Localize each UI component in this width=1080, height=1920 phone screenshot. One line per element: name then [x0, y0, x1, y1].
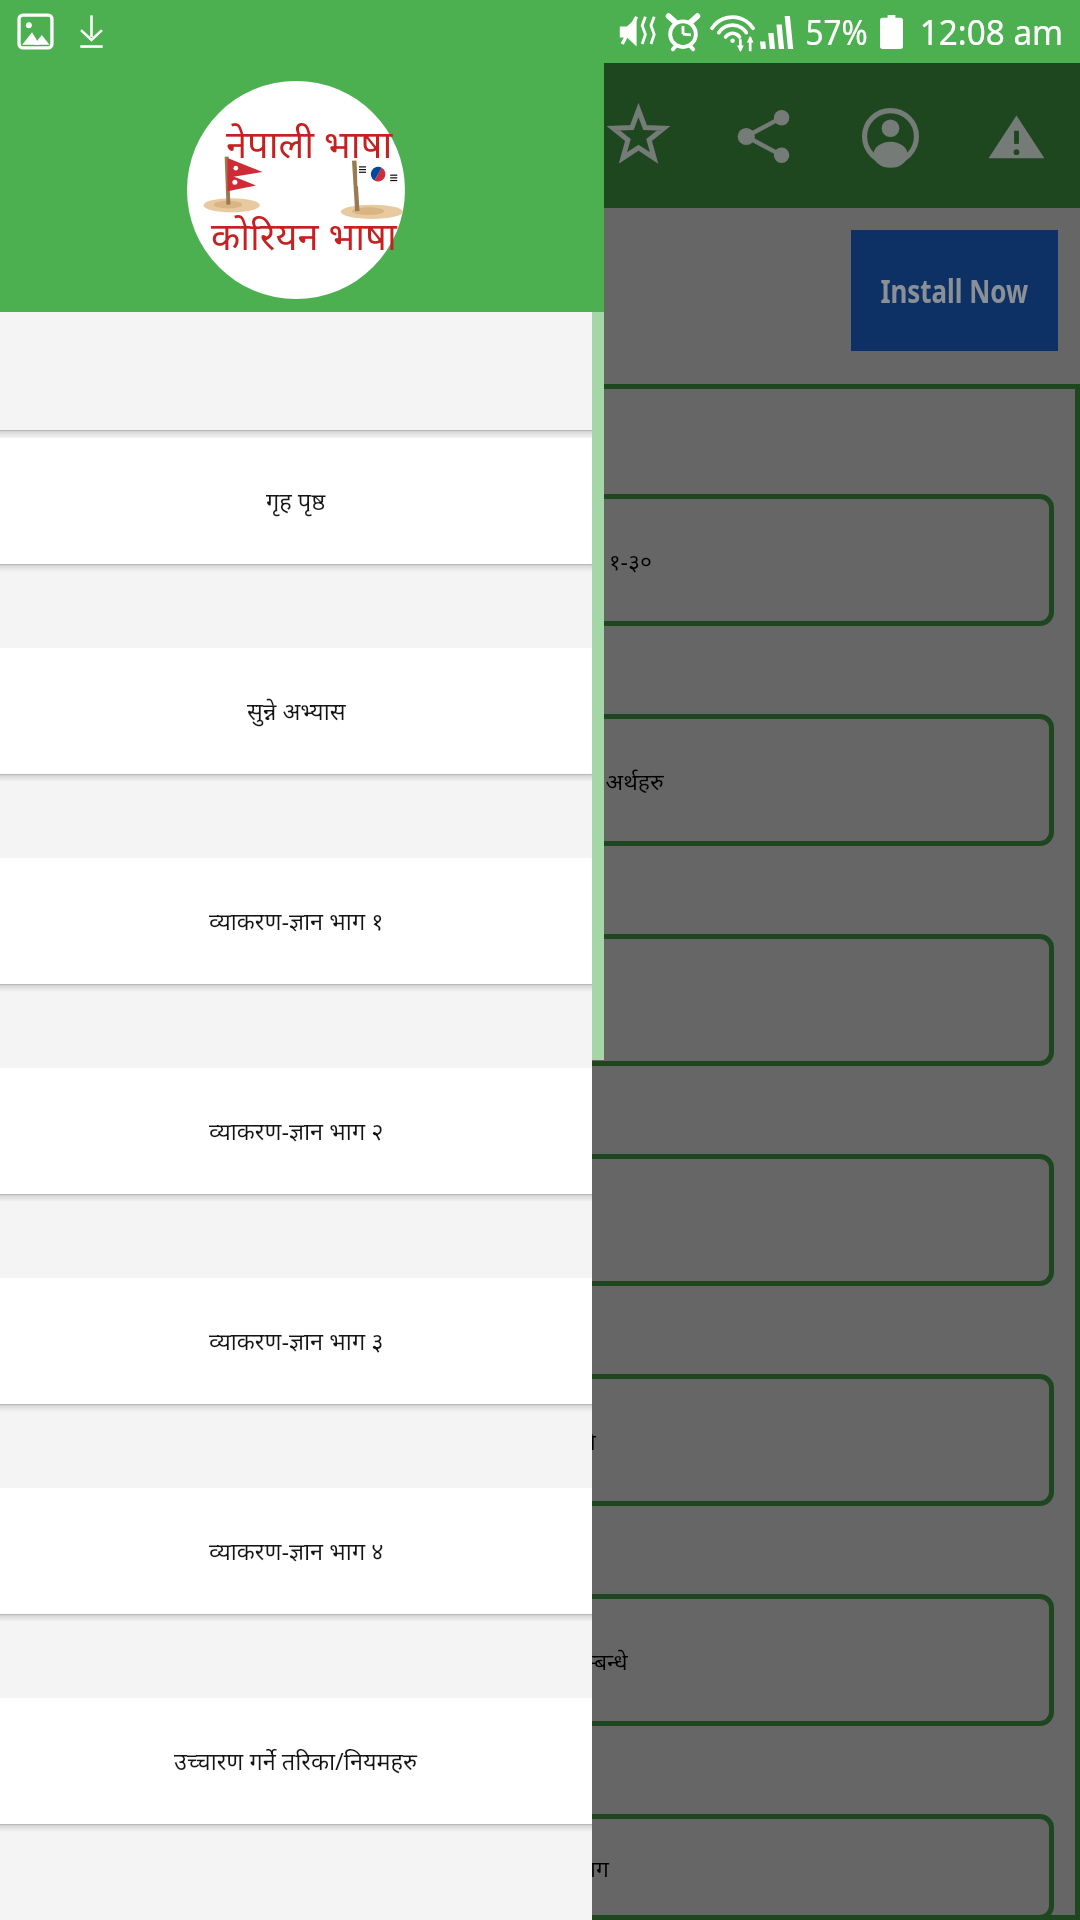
button[interactable]: कोरिया बारेमा सम्बन्धे	[26, 1594, 1054, 1726]
button[interactable]: गृह पृष्ठ	[0, 438, 592, 564]
button[interactable]: Share	[701, 73, 827, 199]
staticText: व्याकरण-ज्ञान भाग ४	[209, 1535, 384, 1567]
button[interactable]: व्याकरण-ज्ञान भाग १	[0, 858, 592, 984]
button[interactable]: व्याकरण-ज्ञान भाग ४	[0, 1488, 592, 1614]
staticText: कोरियन भाषा	[211, 209, 397, 261]
staticText: व्याकरण-ज्ञान भाग २	[209, 1115, 384, 1147]
staticText: कोरियन शब्द र तिनका अर्थहरु	[416, 765, 664, 796]
button[interactable]: Install Now	[851, 230, 1058, 351]
staticText: सुन्ने अभ्यास भाग	[471, 1852, 609, 1883]
button[interactable]: सुन्ने अभ्यास	[0, 648, 592, 774]
staticText: व्याकरण-ज्ञान भाग ३	[209, 1325, 384, 1357]
staticText: व्याकरण-ज्ञान भाग १	[209, 905, 384, 937]
button[interactable]: शब्द ज्ञान	[26, 1154, 1054, 1286]
button[interactable]: Account	[827, 73, 953, 199]
button[interactable]: Report	[953, 73, 1079, 199]
button[interactable]: Favourite	[575, 73, 701, 199]
button[interactable]: Screenshot	[18, 14, 53, 49]
staticText: 12:08 am	[920, 8, 1063, 56]
staticText: 57%	[805, 8, 868, 56]
staticText: कोरियन शब्दहरु भाग १-३०	[429, 545, 652, 576]
button[interactable]: व्याकरण-ज्ञान भाग ३	[0, 1278, 592, 1404]
button[interactable]: कोरियन भाषा	[26, 934, 1054, 1066]
button[interactable]: व्याकरण-ज्ञान भाग २	[0, 1068, 592, 1194]
staticText: उच्चारण गर्ने तरिका/नियमहरु	[174, 1745, 418, 1777]
button[interactable]: कोरियन शब्द र तिनका अर्थहरु	[26, 714, 1054, 846]
button[interactable]: Download	[74, 14, 109, 49]
button[interactable]: उच्चारण गर्ने तरिका/नियमहरु	[0, 1698, 592, 1824]
button[interactable]: सुन्ने अभ्यास भाग	[26, 1814, 1054, 1920]
staticText: गृह पृष्ठ	[266, 485, 326, 517]
staticText: Install Now	[880, 269, 1029, 313]
staticText: सुन्ने अभ्यास	[247, 695, 346, 727]
button[interactable]: कोरियन लिपि	[26, 1374, 1054, 1506]
staticText: कोरिया बारेमा सम्बन्धे	[452, 1645, 628, 1676]
staticText: कोरियन लिपि	[484, 1425, 596, 1456]
staticText: कोरियन भाषा	[484, 985, 597, 1016]
staticText: नेपाली भाषा	[226, 117, 393, 169]
button[interactable]: कोरियन शब्दहरु भाग १-३०	[26, 494, 1054, 626]
